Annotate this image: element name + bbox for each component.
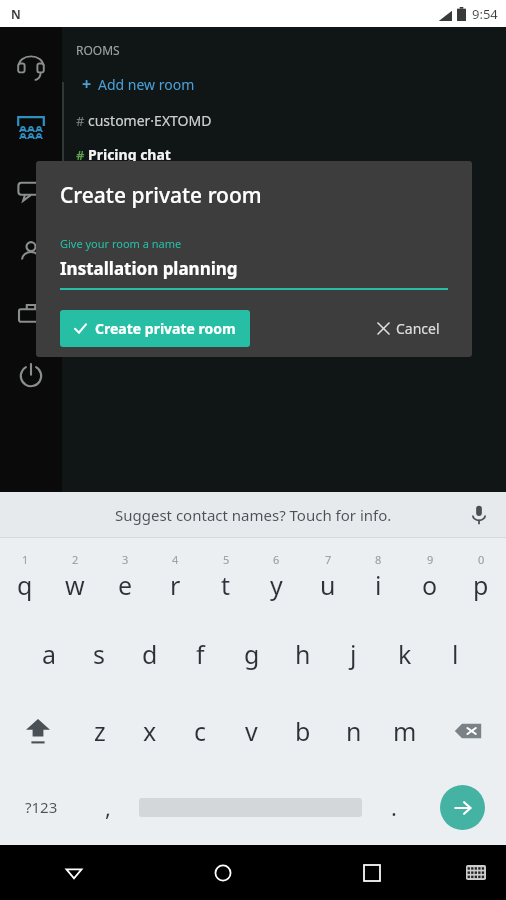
button[interactable]: # xyxy=(76,109,212,132)
staticText: 4 xyxy=(172,552,179,567)
button[interactable]: v xyxy=(226,692,277,769)
button[interactable]: c xyxy=(175,692,226,769)
staticText: Create private room xyxy=(95,319,236,338)
button[interactable]: h xyxy=(277,615,328,692)
staticText: # xyxy=(76,146,85,164)
staticText: v xyxy=(245,714,258,748)
staticText: l xyxy=(452,637,459,671)
staticText: h xyxy=(295,637,311,671)
button[interactable]: Home xyxy=(148,845,297,900)
staticText: u xyxy=(320,568,336,602)
button[interactable]: Sign out xyxy=(0,345,62,407)
staticText: N xyxy=(11,6,21,22)
staticText: o xyxy=(422,568,438,602)
button[interactable]: 3 xyxy=(100,538,150,615)
button[interactable]: Back xyxy=(0,845,148,900)
staticText: 7 xyxy=(325,552,332,567)
button[interactable]: Space xyxy=(133,769,368,845)
staticText: Create private room xyxy=(60,181,262,210)
button[interactable]: Contacts xyxy=(0,221,62,283)
staticText: 3 xyxy=(122,552,129,567)
button[interactable]: Cancel xyxy=(370,311,448,346)
staticText: i xyxy=(375,568,382,602)
button[interactable]: Rooms xyxy=(0,97,62,159)
staticText: p xyxy=(473,568,489,602)
staticText: f xyxy=(196,637,205,671)
button[interactable]: 2 xyxy=(50,538,100,615)
staticText: ?123 xyxy=(25,797,58,817)
button[interactable]: Create private room xyxy=(60,310,250,347)
button[interactable]: j xyxy=(328,615,379,692)
staticText: Give your room a name xyxy=(60,236,182,251)
staticText: + xyxy=(82,73,92,95)
button[interactable]: x xyxy=(125,692,175,769)
button[interactable]: Chats xyxy=(0,159,62,221)
button[interactable]: 0 xyxy=(455,538,506,615)
button[interactable]: Voice input xyxy=(466,502,492,528)
button[interactable]: Shift xyxy=(0,692,75,769)
staticText: x xyxy=(143,714,157,748)
staticText: Installation planning xyxy=(60,257,238,280)
button[interactable]: s xyxy=(74,615,124,692)
staticText: c xyxy=(194,714,207,748)
staticText: r xyxy=(170,568,181,602)
button[interactable]: f xyxy=(175,615,226,692)
staticText: Cancel xyxy=(396,319,440,338)
staticText: . xyxy=(391,792,397,822)
staticText: , xyxy=(105,792,111,822)
button[interactable]: + xyxy=(76,71,195,97)
staticText: q xyxy=(17,568,33,602)
staticText: 1 xyxy=(22,552,29,567)
staticText: ROOMS xyxy=(76,42,120,58)
staticText: a xyxy=(42,637,57,671)
staticText: g xyxy=(244,637,260,671)
button[interactable]: 4 xyxy=(150,538,200,615)
button[interactable]: k xyxy=(379,615,430,692)
staticText: n xyxy=(346,714,362,748)
button[interactable]: 7 xyxy=(302,538,353,615)
staticText: y xyxy=(270,568,283,602)
staticText: b xyxy=(295,714,311,748)
staticText: t xyxy=(221,568,231,602)
button[interactable]: 8 xyxy=(353,538,404,615)
button[interactable]: l xyxy=(430,615,481,692)
staticText: j xyxy=(350,637,357,671)
button[interactable]: b xyxy=(277,692,328,769)
button[interactable]: g xyxy=(226,615,277,692)
button[interactable]: Calls xyxy=(0,35,62,97)
staticText: # xyxy=(76,112,85,130)
button[interactable]: ?123 xyxy=(0,769,82,845)
button[interactable]: 9 xyxy=(404,538,455,615)
button[interactable]: Switch keyboard xyxy=(446,845,506,900)
staticText: 0 xyxy=(478,552,485,567)
button[interactable]: n xyxy=(328,692,379,769)
button[interactable]: . xyxy=(368,769,419,845)
staticText: customer·EXTOMD xyxy=(88,111,212,130)
button[interactable]: z xyxy=(75,692,125,769)
button[interactable]: Work xyxy=(0,283,62,345)
staticText: 5 xyxy=(223,552,230,567)
button[interactable]: 1 xyxy=(0,538,50,615)
staticText: 2 xyxy=(72,552,79,567)
staticText: 8 xyxy=(375,552,382,567)
button[interactable]: Backspace xyxy=(430,692,506,769)
button[interactable]: Recents xyxy=(297,845,446,900)
button[interactable]: # xyxy=(76,143,171,166)
button[interactable]: m xyxy=(379,692,430,769)
staticText: 9:54 xyxy=(472,5,498,23)
staticText: 6 xyxy=(273,552,280,567)
button[interactable]: 6 xyxy=(251,538,302,615)
button[interactable]: , xyxy=(82,769,133,845)
staticText: s xyxy=(93,637,105,671)
staticText: w xyxy=(65,568,85,602)
staticText: d xyxy=(142,637,158,671)
staticText: e xyxy=(118,568,133,602)
button[interactable]: d xyxy=(124,615,175,692)
button[interactable]: 5 xyxy=(200,538,251,615)
button[interactable]: Suggest contact names? Touch for info. xyxy=(115,505,392,525)
button[interactable]: a xyxy=(24,615,74,692)
staticText: 9 xyxy=(427,552,434,567)
staticText: Pricing chat xyxy=(88,145,171,164)
button[interactable]: Enter xyxy=(419,769,506,845)
staticText: k xyxy=(398,637,412,671)
